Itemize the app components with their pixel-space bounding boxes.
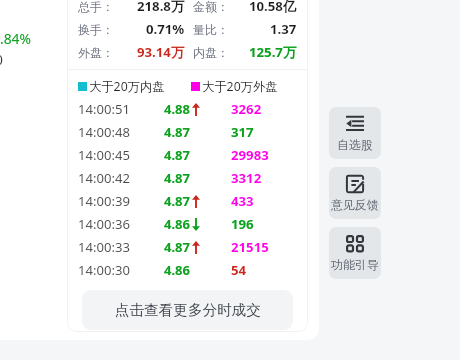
- staticText: 4.87: [164, 123, 190, 141]
- staticText: 3262: [231, 100, 262, 118]
- staticText: 功能引导: [331, 258, 379, 273]
- button[interactable]: 意见反馈: [329, 167, 381, 219]
- staticText: 14:00:48: [78, 123, 130, 141]
- staticText: 点击查看更多分时成交: [115, 301, 261, 319]
- button[interactable]: 14:00:39: [67, 192, 308, 210]
- staticText: 14:00:36: [78, 215, 130, 233]
- button[interactable]: 14:00:33: [67, 238, 308, 256]
- staticText: 14:00:33: [78, 238, 130, 256]
- staticText: 换手：: [78, 22, 114, 37]
- staticText: 意见反馈: [331, 198, 379, 213]
- staticText: 317: [231, 123, 254, 141]
- staticText: 4.86: [164, 261, 190, 279]
- button[interactable]: 功能引导: [329, 227, 381, 279]
- button[interactable]: 14:00:48: [67, 123, 308, 141]
- staticText: 14:00:42: [78, 169, 130, 187]
- staticText: 0.71%: [146, 20, 185, 38]
- button[interactable]: 14:00:51: [67, 100, 308, 118]
- staticText: 金额：: [193, 0, 229, 14]
- staticText: 218.8万: [137, 0, 185, 15]
- staticText: 21515: [231, 238, 269, 256]
- staticText: 10.58亿: [249, 0, 297, 15]
- staticText: 4.87: [164, 146, 190, 164]
- staticText: 大于20万外盘: [202, 78, 278, 94]
- staticText: 433: [231, 192, 254, 210]
- staticText: .84%: [0, 29, 31, 48]
- staticText: 4.86: [164, 215, 190, 233]
- button[interactable]: 14:00:30: [67, 261, 308, 279]
- staticText: 3312: [231, 169, 262, 187]
- staticText: 54: [231, 261, 247, 279]
- staticText: 14:00:45: [78, 146, 130, 164]
- staticText: 4.87: [164, 238, 190, 256]
- staticText: 4.88: [164, 100, 190, 118]
- staticText: 125.7万: [249, 43, 297, 61]
- button[interactable]: 自选股: [329, 107, 381, 159]
- staticText: 内盘：: [193, 45, 229, 60]
- button[interactable]: 14:00:36: [67, 215, 308, 233]
- button[interactable]: 14:00:45: [67, 146, 308, 164]
- staticText: 14:00:39: [78, 192, 130, 210]
- staticText: 量比：: [193, 22, 229, 37]
- button[interactable]: 点击查看更多分时成交: [82, 290, 293, 330]
- staticText: 总手：: [78, 0, 114, 14]
- button[interactable]: 14:00:42: [67, 169, 308, 187]
- staticText: 29983: [231, 146, 269, 164]
- staticText: 4.87: [164, 169, 190, 187]
- staticText: 1.37: [270, 20, 297, 38]
- staticText: 196: [231, 215, 254, 233]
- staticText: 0: [0, 50, 3, 69]
- staticText: 自选股: [337, 138, 373, 153]
- staticText: 4.87: [164, 192, 190, 210]
- staticText: 大于20万内盘: [89, 78, 165, 94]
- staticText: 外盘：: [78, 45, 114, 60]
- staticText: 14:00:30: [78, 261, 130, 279]
- staticText: 14:00:51: [78, 100, 130, 118]
- staticText: 93.14万: [137, 43, 185, 61]
